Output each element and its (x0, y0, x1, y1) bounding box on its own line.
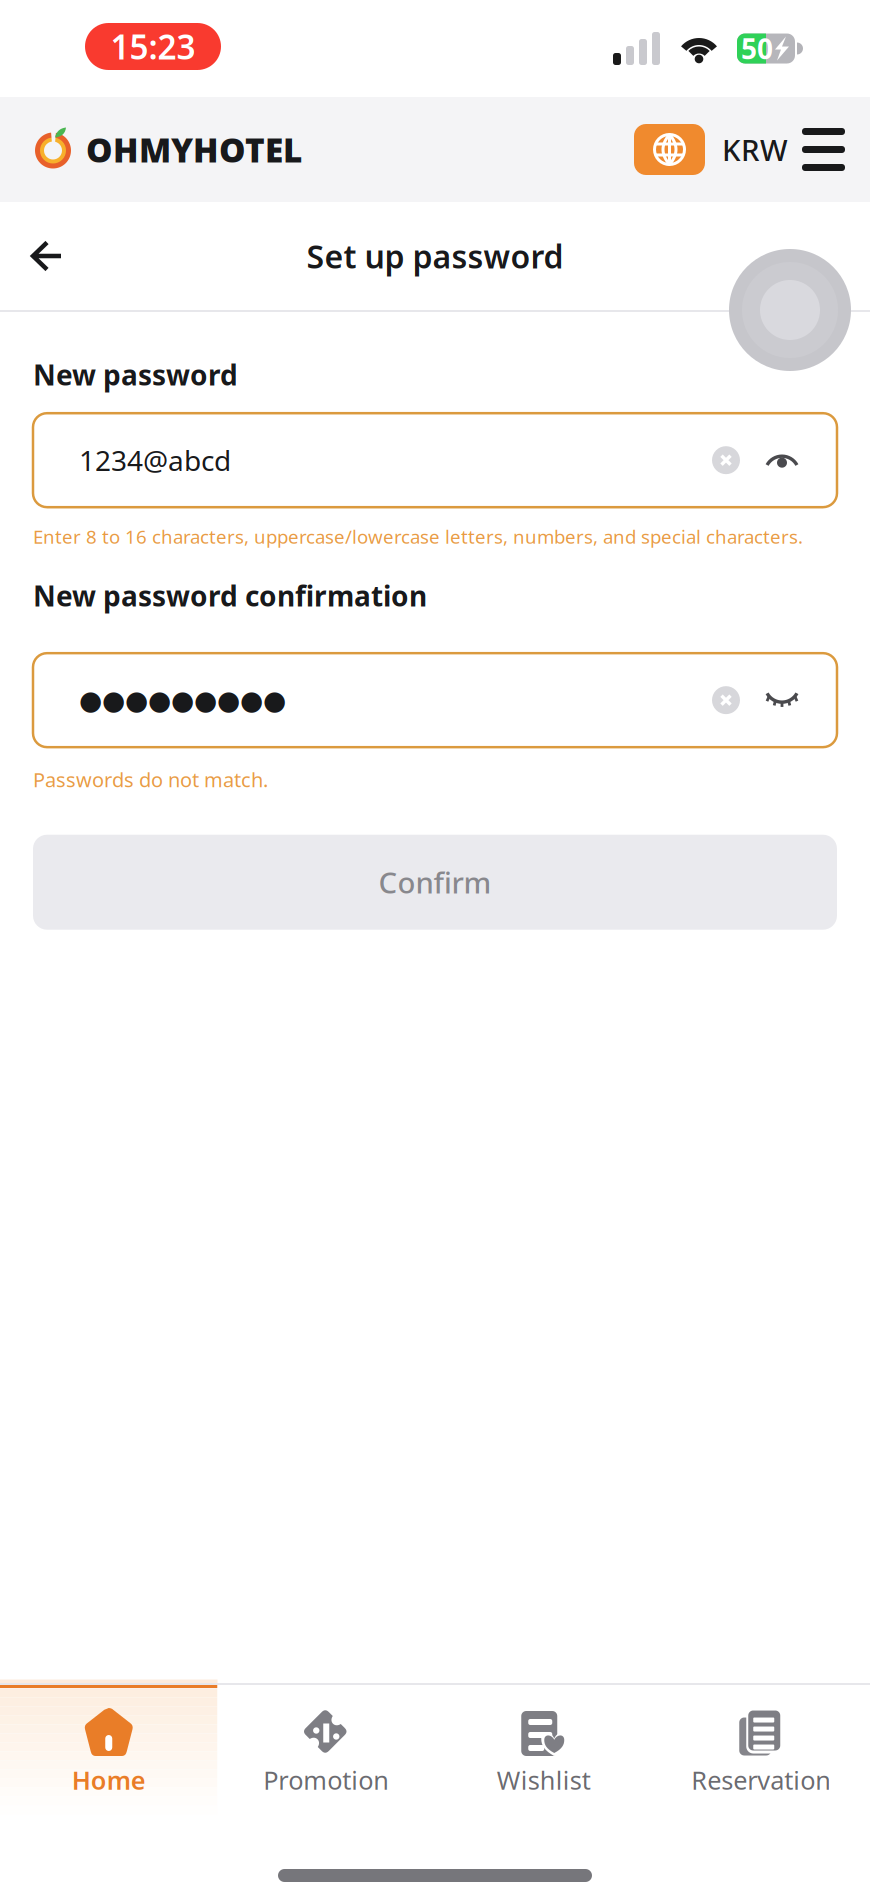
button[interactable]: Wishlist (435, 1683, 652, 1820)
button[interactable]: Promotion (217, 1683, 435, 1820)
staticText: 1234@abcd (79, 442, 231, 479)
staticText: Passwords do not match. (33, 766, 268, 793)
staticText: KRW (722, 130, 788, 169)
staticText: Home (72, 1763, 146, 1797)
staticText: 50 (741, 30, 773, 67)
staticText: New password (33, 356, 238, 393)
staticText: New password confirmation (33, 577, 427, 614)
button[interactable]: Show password (753, 426, 811, 494)
button[interactable]: Home (0, 1683, 217, 1820)
staticText: OHMYHOTEL (86, 127, 302, 172)
button[interactable]: Back (0, 209, 93, 303)
button[interactable]: Menu (788, 114, 859, 185)
staticText: Reservation (691, 1763, 831, 1797)
button[interactable]: Clear text (699, 664, 753, 736)
staticText: Promotion (263, 1763, 389, 1797)
button[interactable]: Confirm (33, 835, 837, 930)
staticText: Set up password (306, 235, 563, 277)
button[interactable]: Reservation (652, 1683, 870, 1820)
button[interactable]: Clear text (699, 424, 753, 496)
staticText: 15:23 (110, 24, 195, 69)
button[interactable]: Language (634, 124, 705, 175)
staticText: ●●●●●●●●● (79, 685, 286, 715)
staticText: Confirm (378, 863, 491, 902)
button[interactable]: Show password (753, 666, 811, 734)
staticText: Enter 8 to 16 characters, uppercase/lowe… (33, 524, 803, 549)
staticText: Wishlist (497, 1763, 591, 1797)
